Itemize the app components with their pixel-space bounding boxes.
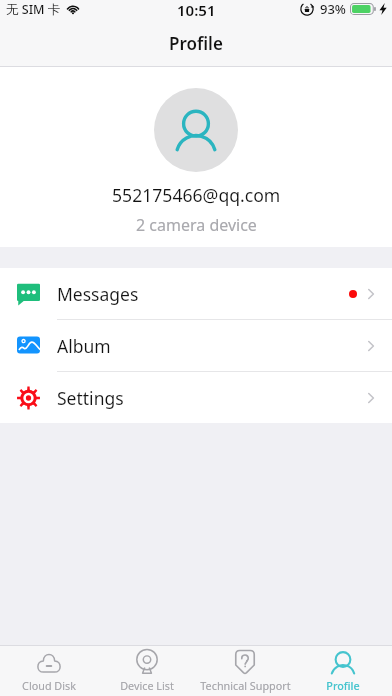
staticText: Profile <box>169 32 223 55</box>
staticText: 2 camera device <box>136 214 257 236</box>
button[interactable]: Cloud Disk <box>0 646 98 696</box>
staticText: Device List <box>120 678 174 693</box>
staticText: 10:51 <box>177 0 216 20</box>
staticText: Album <box>57 334 111 358</box>
button[interactable]: Messages <box>0 268 392 320</box>
button[interactable]: Profile <box>294 646 392 696</box>
staticText: 93% <box>320 0 346 18</box>
staticText: 无 SIM 卡 <box>6 1 61 18</box>
button[interactable]: Device List <box>98 646 196 696</box>
button[interactable]: Technical Support <box>196 646 294 696</box>
staticText: Messages <box>57 282 139 306</box>
staticText: Technical Support <box>200 678 291 693</box>
button[interactable]: Album <box>0 320 392 372</box>
button[interactable]: Settings <box>0 372 392 423</box>
staticText: 552175466@qq.com <box>112 183 281 207</box>
staticText: Profile <box>326 678 360 693</box>
staticText: Cloud Disk <box>22 678 76 693</box>
button[interactable]: Profile avatar <box>154 88 238 172</box>
staticText: Settings <box>57 386 124 410</box>
